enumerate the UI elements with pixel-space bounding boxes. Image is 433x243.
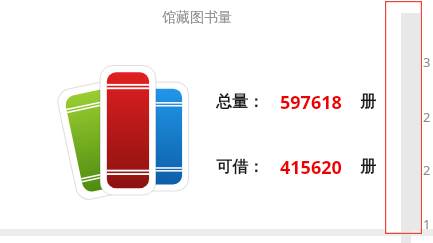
staticText: 1 bbox=[423, 215, 431, 233]
staticText: 册 bbox=[360, 92, 376, 112]
button[interactable]: Books bbox=[58, 66, 190, 192]
staticText: 597618 bbox=[280, 90, 342, 115]
staticText: 馆藏图书量 bbox=[162, 9, 232, 27]
staticText: 2 bbox=[423, 108, 431, 126]
button[interactable]: 总量： bbox=[216, 88, 396, 116]
staticText: 415620 bbox=[280, 155, 342, 180]
button[interactable]: 馆藏图书量 bbox=[160, 8, 234, 28]
staticText: 2 bbox=[423, 161, 431, 179]
staticText: 3 bbox=[423, 53, 431, 71]
staticText: 册 bbox=[360, 157, 376, 177]
staticText: 可借： bbox=[216, 157, 264, 177]
staticText: 总量： bbox=[216, 92, 264, 112]
button[interactable]: 可借： bbox=[216, 153, 396, 181]
